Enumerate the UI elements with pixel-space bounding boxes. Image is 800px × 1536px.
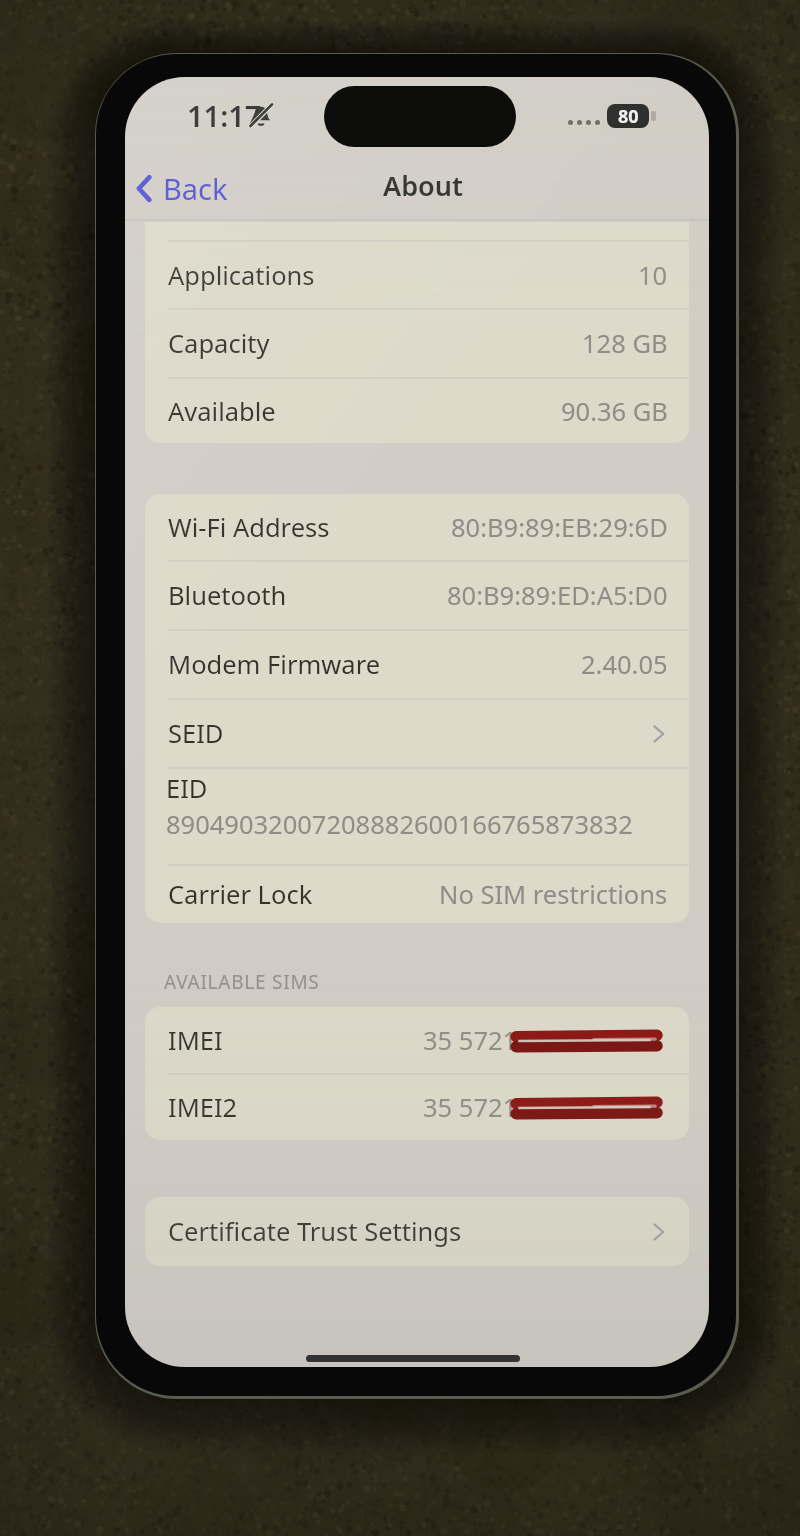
staticText: 80:B9:89:EB:29:6D [451, 510, 668, 545]
button[interactable]: SEID [145, 700, 689, 767]
button[interactable]: Carrier Lock [145, 866, 689, 923]
staticText: 35 5721 [423, 1023, 518, 1058]
button[interactable]: Capacity [145, 310, 689, 377]
staticText: IMEI [168, 1023, 223, 1058]
staticText: Wi-Fi Address [168, 510, 330, 545]
staticText: Available [168, 394, 276, 429]
staticText: AVAILABLE SIMS [164, 969, 320, 995]
button[interactable]: Applications [145, 242, 689, 308]
button[interactable]: IMEI [145, 1007, 689, 1073]
staticText: 2.40.05 [581, 647, 668, 682]
staticText: Carrier Lock [168, 877, 313, 912]
staticText: 80 [618, 104, 639, 128]
staticText: IMEI2 [168, 1090, 238, 1125]
staticText: 35 5721 [423, 1090, 518, 1125]
staticText: 90.36 GB [561, 394, 668, 429]
staticText: 10 [638, 258, 668, 293]
staticText: Capacity [168, 326, 270, 361]
staticText: Bluetooth [168, 578, 287, 613]
staticText: SEID [168, 716, 224, 751]
button[interactable]: Back [129, 165, 238, 212]
staticText: Applications [168, 258, 315, 293]
staticText: 11:17 [187, 96, 262, 135]
staticText: EID [166, 771, 208, 806]
other: Silent mode [249, 103, 273, 127]
staticText: Modem Firmware [168, 647, 381, 682]
button[interactable]: Available [145, 379, 689, 443]
button[interactable]: Certificate Trust Settings [145, 1197, 689, 1266]
button[interactable]: Wi-Fi Address [145, 494, 689, 560]
button[interactable]: IMEI2 [145, 1075, 689, 1140]
button[interactable]: Modem Firmware [145, 631, 689, 698]
staticText: 128 GB [582, 326, 668, 361]
staticText: 80:B9:89:ED:A5:D0 [447, 578, 668, 613]
staticText: 89049032007208882600166765873832 [166, 807, 633, 842]
staticText: About [383, 167, 463, 204]
staticText: No SIM restrictions [439, 877, 668, 912]
staticText: Back [163, 169, 228, 208]
button[interactable]: EID [145, 769, 689, 864]
staticText: Certificate Trust Settings [168, 1214, 462, 1249]
button[interactable]: Bluetooth [145, 562, 689, 629]
